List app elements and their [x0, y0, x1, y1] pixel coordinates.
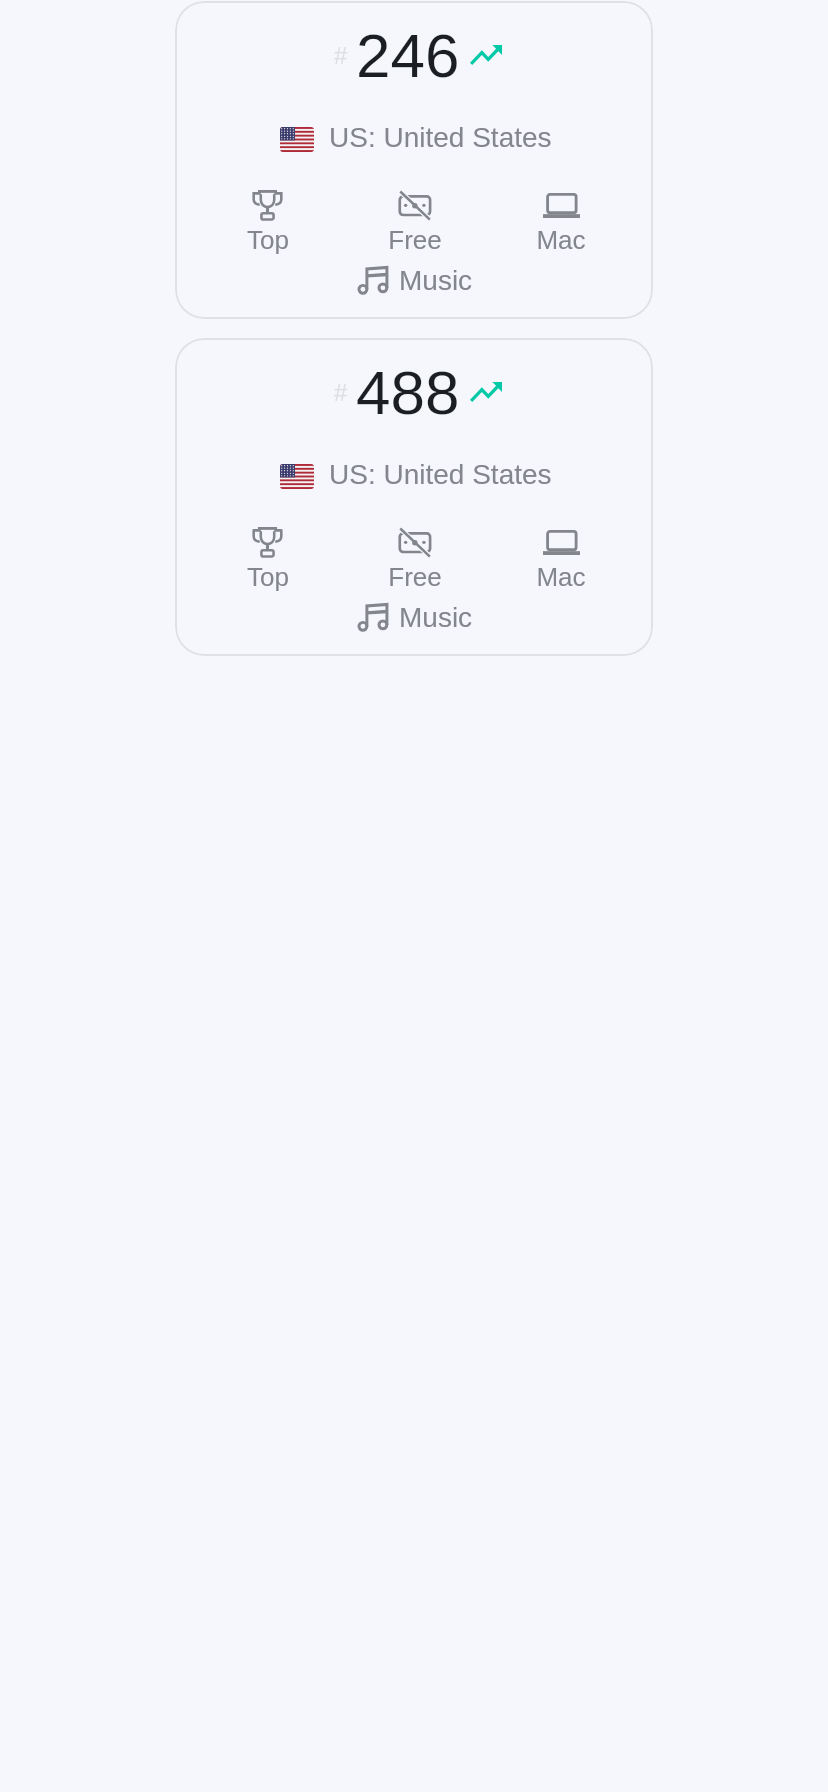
staticText: 488	[356, 358, 460, 427]
button[interactable]: United States flag	[280, 121, 552, 157]
staticText: Free	[388, 562, 442, 591]
button[interactable]: #	[175, 1, 653, 319]
other: United States flag	[280, 127, 314, 152]
staticText: #	[334, 42, 348, 69]
staticText: Music	[399, 265, 473, 296]
button[interactable]: #	[175, 338, 653, 656]
staticText: Free	[388, 225, 442, 254]
staticText: Music	[399, 602, 473, 633]
button[interactable]: Top	[194, 524, 341, 591]
button[interactable]: Music	[358, 262, 473, 298]
button[interactable]: United States flag	[280, 458, 552, 494]
staticText: Mac	[536, 562, 586, 591]
staticText: US: United States	[329, 459, 552, 490]
button[interactable]: Music	[358, 599, 473, 635]
staticText: Mac	[536, 225, 586, 254]
staticText: 246	[356, 21, 460, 90]
staticText: #	[334, 379, 348, 406]
staticText: US: United States	[329, 122, 552, 153]
button[interactable]: Free	[341, 187, 488, 254]
other: United States flag	[280, 464, 314, 489]
button[interactable]: Free	[341, 524, 488, 591]
staticText: Top	[247, 562, 289, 591]
button[interactable]: Mac	[488, 187, 634, 254]
button[interactable]: Top	[194, 187, 341, 254]
button[interactable]: Mac	[488, 524, 634, 591]
staticText: Top	[247, 225, 289, 254]
